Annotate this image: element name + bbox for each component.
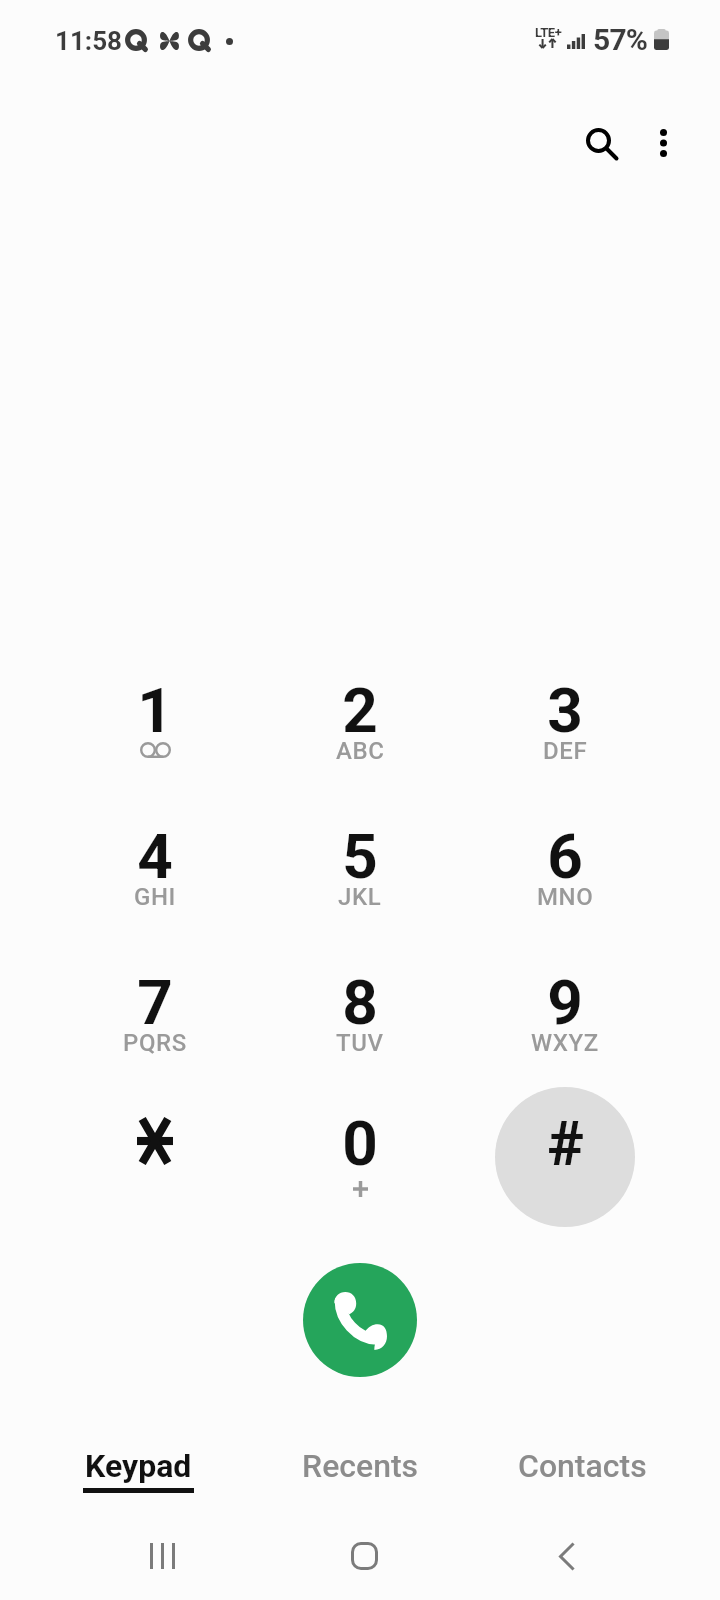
- button[interactable]: 2: [290, 661, 430, 801]
- staticText: 9: [547, 966, 583, 1039]
- button[interactable]: More options: [629, 109, 697, 177]
- staticText: Recents: [302, 1447, 419, 1485]
- staticText: WXYZ: [531, 1029, 599, 1057]
- button[interactable]: 1: [85, 661, 225, 801]
- staticText: MNO: [537, 883, 594, 911]
- button[interactable]: Contacts: [471, 1431, 693, 1505]
- button[interactable]: Search: [566, 108, 638, 180]
- staticText: DEF: [543, 737, 588, 765]
- staticText: TUV: [336, 1029, 384, 1057]
- staticText: Contacts: [518, 1447, 647, 1485]
- button[interactable]: Call: [303, 1263, 417, 1377]
- button[interactable]: Back: [526, 1516, 606, 1596]
- staticText: 57%: [593, 22, 648, 57]
- staticText: 7: [137, 966, 173, 1039]
- staticText: 6: [547, 820, 583, 893]
- staticText: JKL: [338, 883, 382, 911]
- staticText: LTE+: [535, 25, 562, 40]
- staticText: 1: [137, 674, 173, 747]
- button[interactable]: Home: [324, 1516, 404, 1596]
- button[interactable]: #: [495, 1094, 635, 1234]
- staticText: PQRS: [123, 1029, 187, 1057]
- staticText: Keypad: [85, 1447, 192, 1485]
- button[interactable]: 9: [495, 953, 635, 1093]
- button[interactable]: 3: [495, 661, 635, 801]
- staticText: 2: [342, 674, 378, 747]
- staticText: GHI: [134, 883, 176, 911]
- staticText: 11:58: [55, 26, 122, 56]
- button[interactable]: Recents: [249, 1431, 471, 1505]
- button[interactable]: 6: [495, 807, 635, 947]
- staticText: 5: [342, 820, 378, 893]
- button[interactable]: Recent apps: [122, 1516, 202, 1596]
- staticText: 3: [547, 674, 583, 747]
- button[interactable]: Keypad: [27, 1431, 249, 1505]
- button[interactable]: 4: [85, 807, 225, 947]
- button[interactable]: 5: [290, 807, 430, 947]
- button[interactable]: 8: [290, 953, 430, 1093]
- staticText: 4: [137, 820, 173, 893]
- button[interactable]: 7: [85, 953, 225, 1093]
- staticText: ABC: [336, 737, 385, 765]
- button[interactable]: 0: [290, 1094, 430, 1234]
- button[interactable]: star: [85, 1094, 225, 1234]
- staticText: 0: [342, 1107, 378, 1180]
- staticText: 8: [342, 966, 378, 1039]
- staticText: #: [547, 1107, 584, 1180]
